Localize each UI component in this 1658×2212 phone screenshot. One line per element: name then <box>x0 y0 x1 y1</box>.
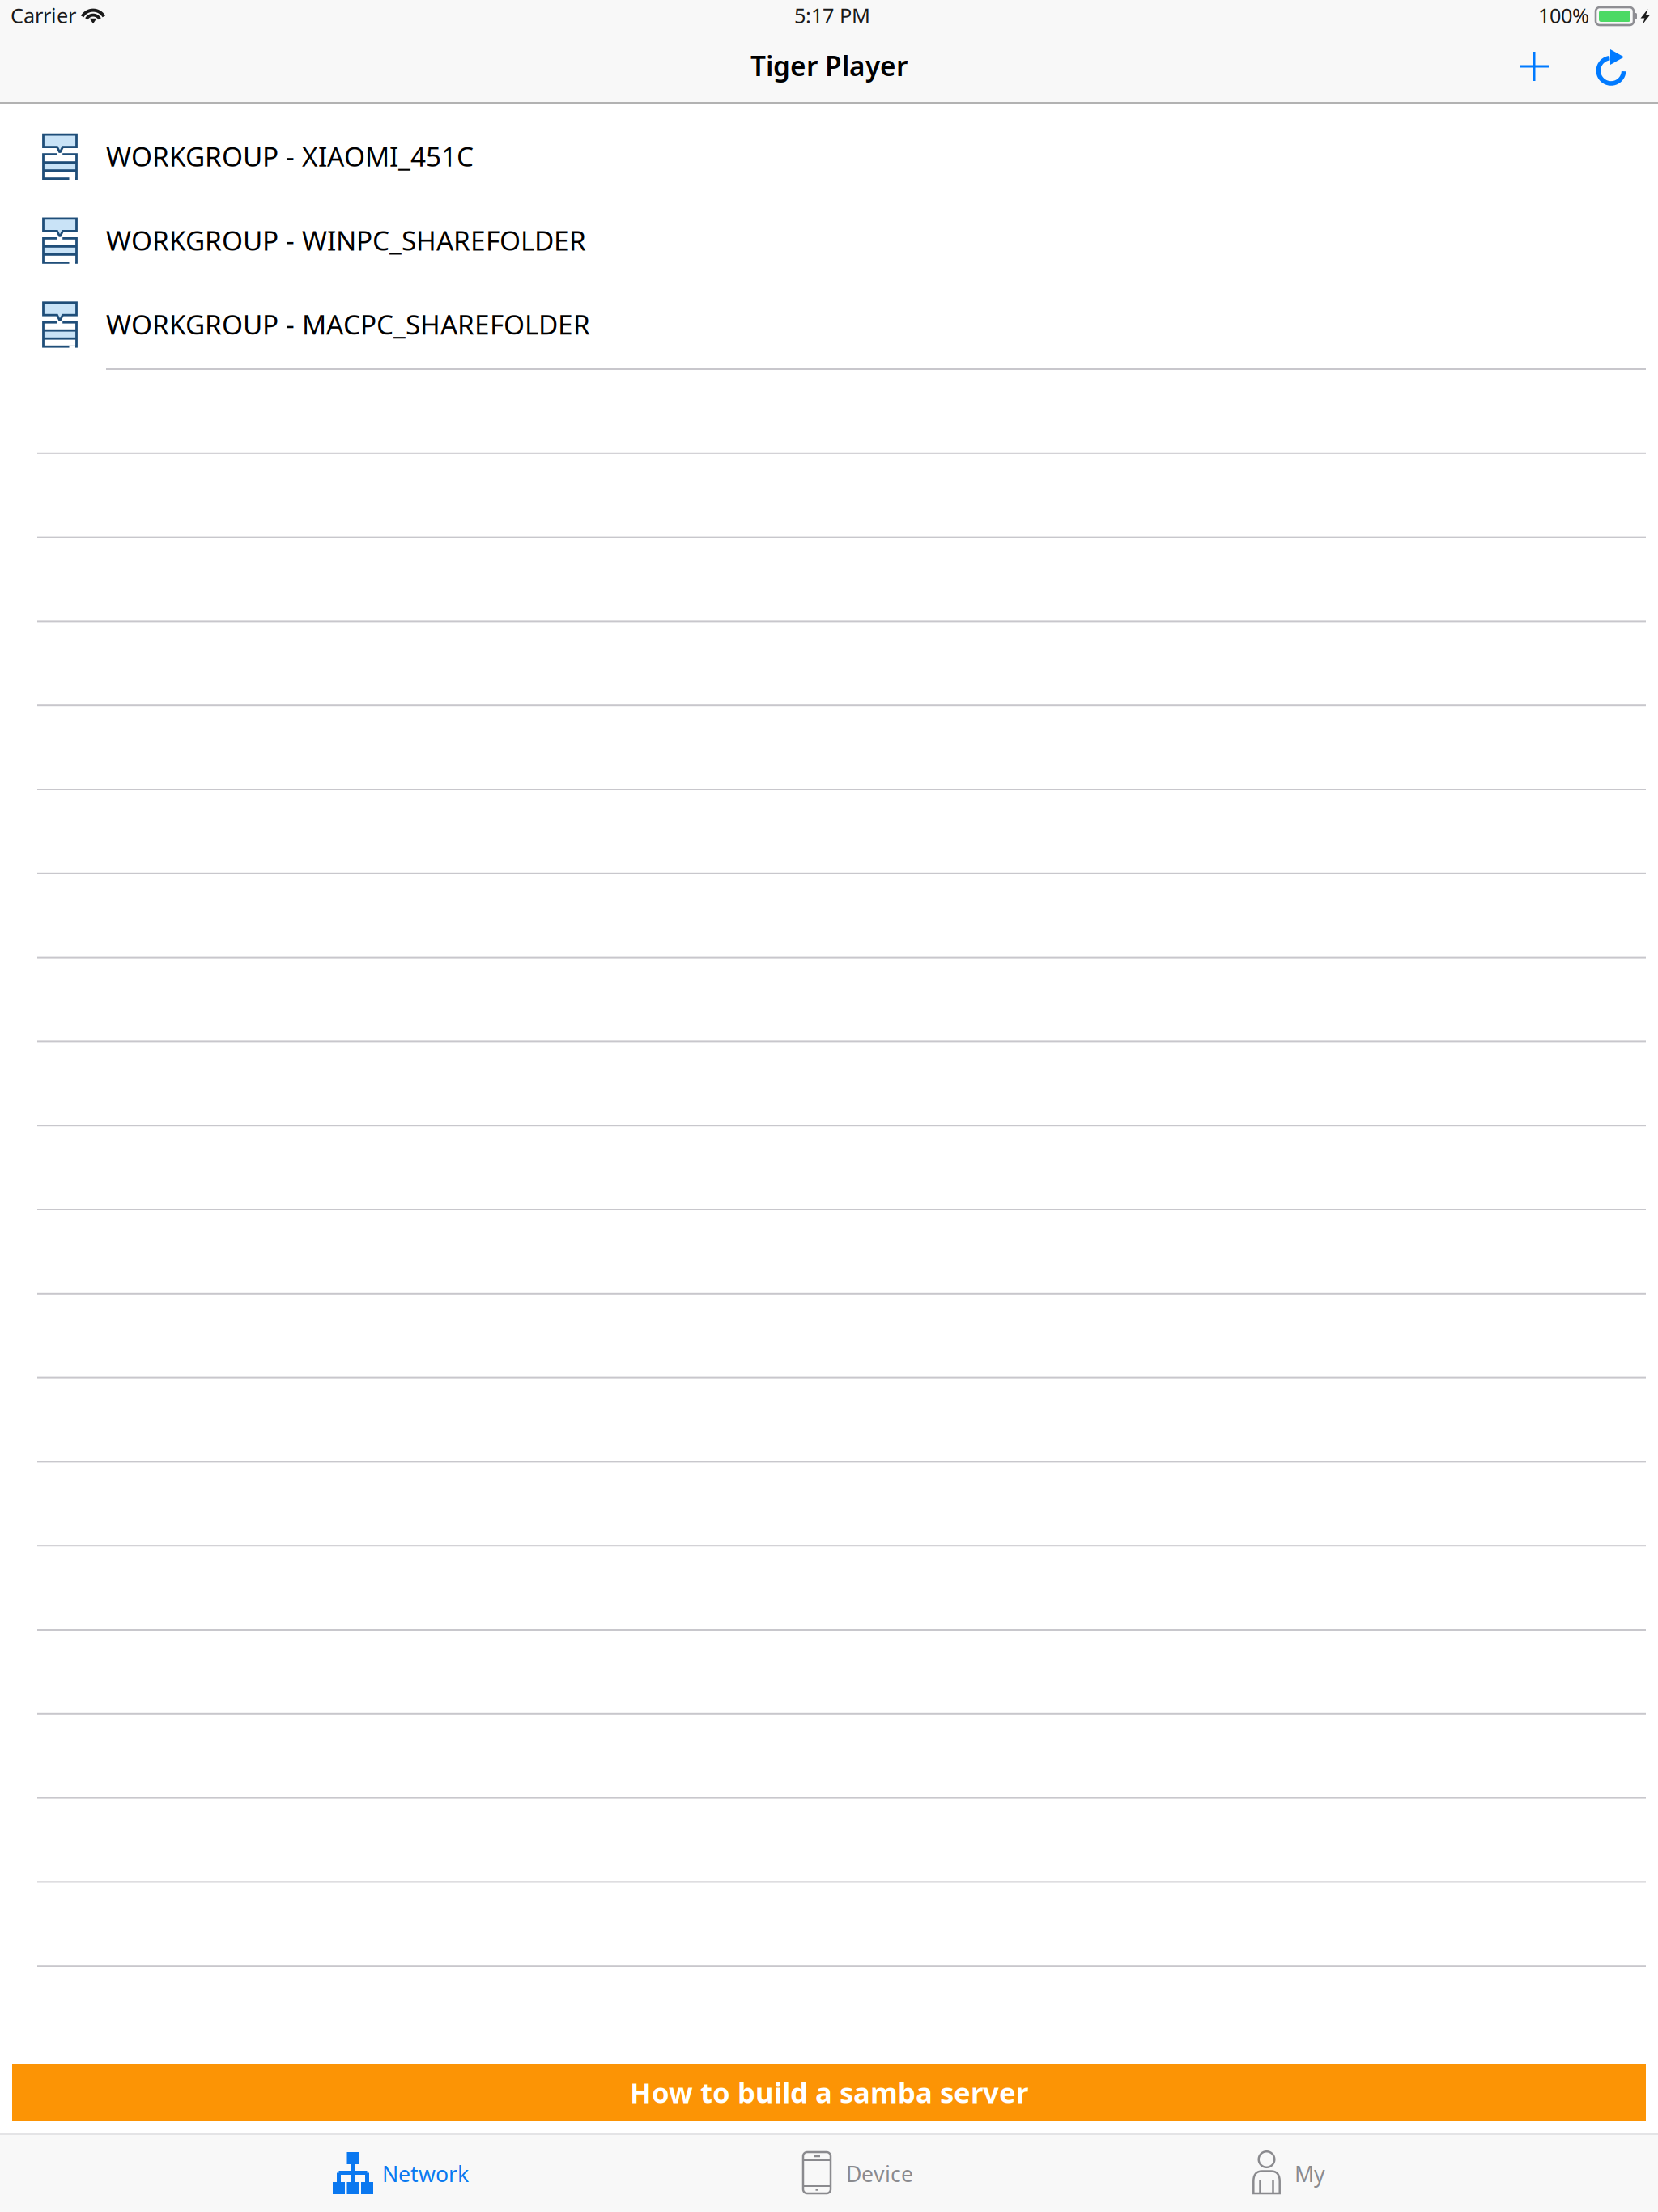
staticText: Carrier <box>11 2 76 29</box>
button[interactable]: How to build a samba server <box>12 2064 1646 2121</box>
button[interactable]: Network <box>176 2133 621 2212</box>
button[interactable]: WORKGROUP - WINPC_SHAREFOLDER <box>0 200 1658 284</box>
staticText: WORKGROUP - XIAOMI_451C <box>106 138 474 174</box>
staticText: 100% <box>1538 2 1589 29</box>
staticText: My <box>1295 2159 1325 2188</box>
staticText: Network <box>382 2159 469 2188</box>
button[interactable]: Add <box>1496 34 1572 99</box>
button[interactable]: My <box>1066 2133 1511 2212</box>
staticText: How to build a samba server <box>630 2074 1028 2111</box>
button[interactable]: Device <box>635 2133 1080 2212</box>
button[interactable]: WORKGROUP - XIAOMI_451C <box>0 116 1658 200</box>
staticText: Tiger Player <box>750 48 908 84</box>
staticText: WORKGROUP - WINPC_SHAREFOLDER <box>106 222 586 258</box>
staticText: 5:17 PM <box>794 2 870 29</box>
staticText: Device <box>846 2159 913 2188</box>
button[interactable]: Refresh <box>1573 35 1649 100</box>
staticText: WORKGROUP - MACPC_SHAREFOLDER <box>106 306 590 342</box>
button[interactable]: WORKGROUP - MACPC_SHAREFOLDER <box>0 284 1658 368</box>
